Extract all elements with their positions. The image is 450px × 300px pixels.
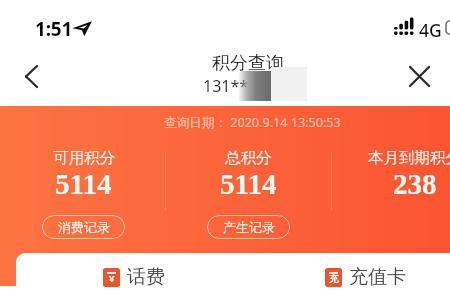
button[interactable]: Back	[0, 46, 62, 106]
staticText: 可用积分	[53, 148, 115, 168]
button[interactable]: Close	[388, 46, 450, 106]
button[interactable]: 产生记录	[207, 215, 290, 239]
staticText: 总积分	[225, 148, 272, 168]
staticText: 本月到期积分	[368, 148, 450, 168]
staticText: 充值卡	[349, 265, 406, 289]
button[interactable]: 充	[325, 265, 406, 289]
button[interactable]: 消费记录	[42, 215, 125, 239]
button[interactable]: ¥	[103, 265, 165, 289]
staticText: 话费	[127, 265, 165, 289]
staticText: 238	[393, 168, 437, 197]
staticText: 5114	[220, 168, 277, 197]
staticText: 产生记录	[223, 219, 275, 235]
staticText: 充	[329, 273, 339, 285]
staticText: 5114	[55, 168, 112, 197]
staticText: 消费记录	[58, 219, 110, 235]
staticText: 积分查询	[212, 52, 284, 75]
staticText: 查询日期： 2020.9.14 13:50:53	[164, 114, 341, 131]
staticText: 1:51	[35, 16, 73, 42]
staticText: 4G	[419, 18, 442, 42]
staticText: 131**	[203, 75, 249, 97]
staticText: ¥	[109, 272, 115, 285]
